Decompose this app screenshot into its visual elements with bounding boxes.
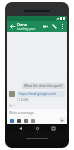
button[interactable]: What the close this open? <box>22 83 65 89</box>
button[interactable]: Back <box>8 22 17 31</box>
button[interactable]: Video call <box>41 22 50 31</box>
button[interactable]: Recent apps <box>50 125 57 132</box>
button[interactable]: Gallery <box>23 118 28 123</box>
button[interactable]: https://mail.google.com/mail/u/0 <box>17 91 65 97</box>
button[interactable]: More <box>30 118 35 123</box>
button[interactable]: Contact photo <box>9 91 15 97</box>
button[interactable]: More options <box>59 23 66 30</box>
staticText: Dana Kirkpatrick <box>17 22 41 27</box>
staticText: https://mail.google.com/mail/u/0 <box>19 92 63 96</box>
staticText: What the close this open? <box>24 84 63 88</box>
button[interactable]: Back <box>17 125 24 132</box>
staticText: 11:32 AM <box>17 98 29 102</box>
staticText: Loading your order <box>17 27 41 31</box>
button[interactable]: Dana Kirkpatrick <box>17 22 41 31</box>
button[interactable]: Camera <box>16 118 21 123</box>
button[interactable]: Home <box>34 125 41 132</box>
button[interactable]: Photos <box>9 118 14 123</box>
staticText: Write a message <box>9 111 34 115</box>
button[interactable]: Write a message <box>7 109 67 116</box>
button[interactable]: Send <box>59 117 65 123</box>
button[interactable]: Call <box>50 22 59 31</box>
